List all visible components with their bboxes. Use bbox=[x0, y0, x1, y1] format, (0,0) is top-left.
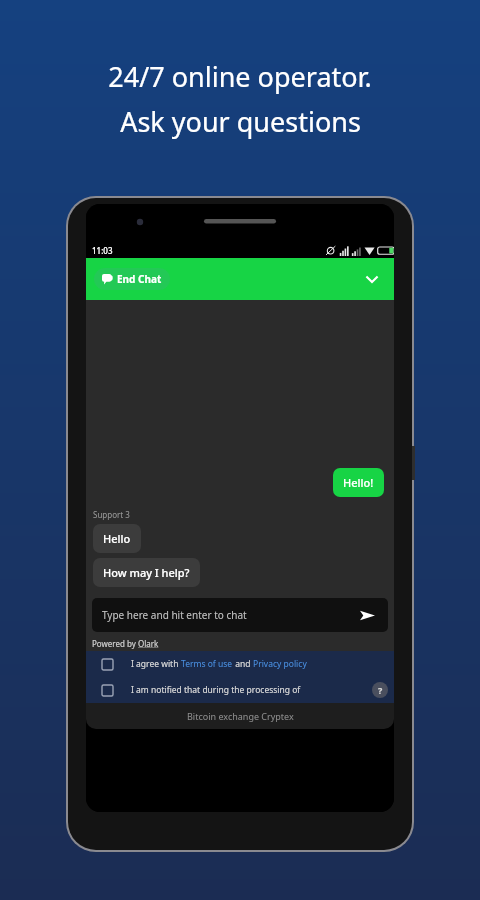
staticText: 11:03 bbox=[92, 245, 113, 256]
staticText: How may I help? bbox=[103, 565, 190, 580]
button[interactable]: Hello bbox=[93, 524, 141, 553]
button[interactable]: How may I help? bbox=[93, 558, 200, 587]
button[interactable]: Hello! bbox=[333, 468, 384, 497]
staticText: Bitcoin exchange Cryptex bbox=[187, 710, 294, 722]
staticText: Powered by bbox=[92, 638, 138, 649]
button[interactable]: I agree with bbox=[86, 651, 394, 677]
staticText: I agree with bbox=[131, 658, 181, 670]
button[interactable]: End Chat bbox=[94, 268, 170, 290]
staticText: 24/7 online operator. bbox=[108, 58, 372, 95]
staticText: and bbox=[233, 658, 253, 670]
button[interactable]: Minimize chat bbox=[360, 267, 384, 291]
staticText: ? bbox=[378, 684, 383, 696]
button[interactable]: Type here and hit enter to chat bbox=[92, 598, 388, 632]
button[interactable]: Help bbox=[372, 682, 388, 698]
staticText: End Chat bbox=[117, 272, 162, 286]
staticText: Type here and hit enter to chat bbox=[102, 608, 247, 622]
staticText: Support 3 bbox=[93, 509, 130, 520]
staticText: Hello bbox=[103, 531, 131, 546]
button[interactable]: End Chat bbox=[86, 258, 394, 300]
button[interactable]: Send message bbox=[356, 604, 378, 626]
staticText: Hello! bbox=[343, 475, 374, 490]
button[interactable]: Terms of use bbox=[181, 658, 233, 670]
button[interactable]: Olark bbox=[138, 638, 159, 649]
button[interactable]: Privacy policy bbox=[253, 658, 307, 670]
staticText: I am notified that during the processing… bbox=[131, 684, 301, 696]
button[interactable]: I am notified that during the processing… bbox=[86, 677, 394, 703]
staticText: Ask your questions bbox=[120, 103, 361, 140]
